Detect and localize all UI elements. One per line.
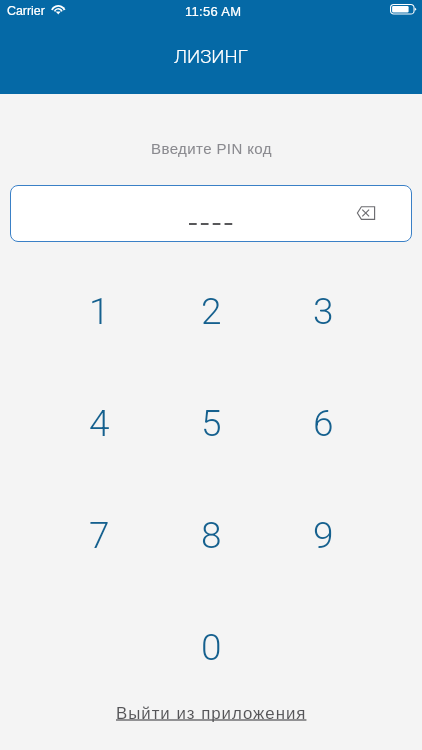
staticText: 3 — [313, 290, 334, 333]
staticText: 4 — [89, 402, 110, 445]
staticText: 7 — [89, 514, 110, 557]
button[interactable]: 5 — [155, 367, 267, 479]
button[interactable]: Удалить — [344, 191, 388, 235]
staticText: 9 — [313, 514, 334, 557]
button[interactable]: 0 — [155, 591, 267, 703]
staticText: 2 — [201, 290, 222, 333]
staticText: 8 — [201, 514, 222, 557]
staticText: 6 — [313, 402, 334, 445]
button[interactable]: 7 — [43, 479, 155, 591]
button[interactable]: 8 — [155, 479, 267, 591]
staticText: 5 — [201, 402, 222, 445]
staticText: Введите PIN код — [151, 140, 272, 157]
staticText: Carrier — [7, 4, 45, 18]
button[interactable]: 9 — [267, 479, 379, 591]
staticText: 1 — [89, 290, 110, 333]
staticText: 11:56 AM — [185, 4, 242, 19]
button[interactable]: 3 — [267, 255, 379, 367]
button[interactable]: 2 — [155, 255, 267, 367]
staticText: ЛИЗИНГ — [174, 46, 248, 68]
button[interactable]: 1 — [43, 255, 155, 367]
button[interactable]: 6 — [267, 367, 379, 479]
button[interactable]: Выйти из приложения — [110, 701, 313, 726]
staticText: Выйти из приложения — [116, 704, 307, 723]
staticText: 0 — [201, 626, 222, 669]
button[interactable]: 4 — [43, 367, 155, 479]
